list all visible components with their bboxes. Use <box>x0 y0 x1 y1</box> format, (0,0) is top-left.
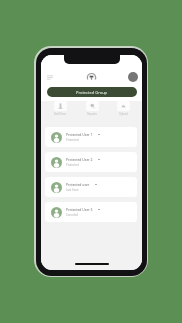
button[interactable]: Protected User 1 <box>45 127 137 147</box>
staticText: Last Seen <box>66 188 79 192</box>
button[interactable]: Reports <box>81 101 103 116</box>
button[interactable]: Profile <box>128 72 138 82</box>
button[interactable]: Protected User 3 <box>45 202 137 222</box>
staticText: Upload <box>119 112 128 116</box>
staticText: Protected user <box>66 182 90 187</box>
staticText: Protected <box>66 138 79 142</box>
button[interactable]: Menu <box>45 72 55 82</box>
button[interactable]: Protected user <box>45 177 137 197</box>
staticText: Reports <box>87 112 97 116</box>
staticText: Bad Drive <box>54 112 66 116</box>
button[interactable]: Protected Group <box>47 87 137 97</box>
staticText: Protected User 2 <box>66 157 93 162</box>
button[interactable]: Upload <box>112 101 134 116</box>
staticText: Protected User 3 <box>66 207 93 212</box>
staticText: Protected <box>66 163 79 167</box>
staticText: Protected User 1 <box>66 132 93 137</box>
staticText: Protected Group <box>76 90 108 95</box>
button[interactable]: Protected User 2 <box>45 152 137 172</box>
button[interactable]: Bad Drive <box>49 101 71 116</box>
staticText: Canceled <box>66 213 79 217</box>
button[interactable]: App logo <box>86 72 97 82</box>
